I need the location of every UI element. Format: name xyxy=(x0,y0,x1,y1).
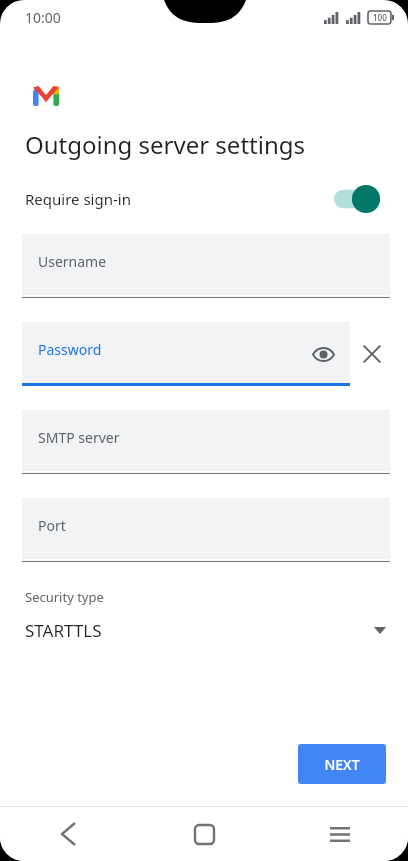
button[interactable]: Port xyxy=(22,498,390,562)
staticText: 100 xyxy=(373,12,387,23)
button[interactable]: Username xyxy=(22,234,390,298)
button[interactable]: Back xyxy=(0,807,136,861)
button[interactable]: Require sign-in toggle xyxy=(334,184,386,214)
staticText: Port xyxy=(38,516,66,535)
staticText: Require sign-in xyxy=(25,189,131,209)
button[interactable]: SMTP server xyxy=(22,410,390,474)
button[interactable]: Show password xyxy=(306,337,340,371)
button[interactable]: Security type xyxy=(0,588,408,642)
staticText: 10:00 xyxy=(25,8,61,27)
button[interactable]: Password xyxy=(22,322,350,386)
staticText: Username xyxy=(38,252,107,271)
staticText: STARTTLS xyxy=(25,619,102,642)
staticText: SMTP server xyxy=(38,428,120,447)
staticText: Password xyxy=(38,340,102,359)
button[interactable]: Recent apps xyxy=(272,807,408,861)
button[interactable]: Require sign-in xyxy=(0,181,408,217)
staticText: Outgoing server settings xyxy=(25,128,306,161)
button[interactable]: Home xyxy=(136,807,272,861)
staticText: Security type xyxy=(25,588,104,606)
staticText: NEXT xyxy=(324,755,360,774)
button[interactable]: Clear password xyxy=(354,336,390,372)
button[interactable]: NEXT xyxy=(298,744,386,784)
